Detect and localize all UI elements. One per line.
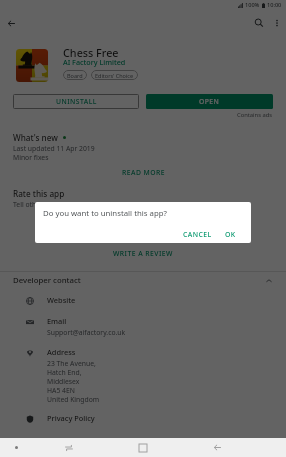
staticText: OK [225,230,236,239]
staticText: AI Factory Limited [63,57,126,67]
staticText: 10:00 [267,1,282,9]
staticText: Tell others what you think [13,200,96,209]
button[interactable]: WRITE A REVIEW [105,247,181,260]
button[interactable]: More options [268,11,286,35]
button[interactable]: Editors' Choice [91,70,138,80]
staticText: Chess Free [63,45,119,60]
staticText: Editors' Choice [95,72,134,79]
button[interactable]: Switch keyboard [32,438,106,457]
staticText: Rate this app [13,188,65,199]
button[interactable]: UNINSTALL [13,94,139,109]
button[interactable]: Home [106,438,180,457]
button[interactable]: READ MORE [114,166,173,179]
button[interactable]: Developer contact [0,272,286,289]
staticText: Website [47,295,76,305]
staticText: OPEN [199,97,220,106]
button[interactable]: OPEN [146,94,273,109]
staticText: Email [47,316,67,326]
button[interactable]: Board [63,70,87,80]
button[interactable]: OK [218,228,243,241]
staticText: Last updated 11 Apr 2019 [13,144,95,153]
staticText: Contains ads [237,111,273,119]
button[interactable]: Back [180,438,254,457]
staticText: READ MORE [122,168,165,177]
staticText: UNINSTALL [56,97,97,106]
staticText: Minor fixes [13,153,49,162]
button[interactable]: Website [0,289,286,311]
staticText: 100% [245,1,260,9]
staticText: Privacy Policy [47,413,95,423]
staticText: WRITE A REVIEW [113,249,173,258]
staticText: Support@aifactory.co.uk [47,328,126,337]
staticText: Board [67,72,83,79]
button[interactable]: Menu [0,438,32,457]
button[interactable]: Privacy Policy [0,409,286,427]
button[interactable]: CANCEL [177,228,218,241]
staticText: CANCEL [183,230,212,239]
button[interactable]: Search [250,11,268,35]
staticText: What's new [13,132,58,143]
staticText: Developer contact [13,275,81,286]
button[interactable]: Address [0,342,286,409]
staticText: Do you want to uninstall this app? [43,208,167,219]
button[interactable]: Email [0,311,286,342]
staticText: Address [47,347,76,357]
staticText: 23 The Avenue, Hatch End, Middlesex HA5 … [47,359,100,404]
button[interactable]: Back [0,11,22,35]
